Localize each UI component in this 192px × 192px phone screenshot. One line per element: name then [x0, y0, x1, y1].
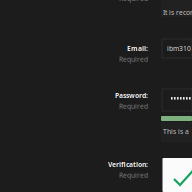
button[interactable]: Password field — [162, 89, 192, 111]
staticText: Required — [119, 171, 148, 180]
staticText: ibm310 — [167, 44, 191, 53]
button[interactable]: Verification captcha — [162, 158, 192, 192]
staticText: Verification: — [108, 160, 148, 169]
staticText: Required — [119, 102, 148, 111]
staticText: It is recom — [163, 8, 192, 17]
staticText: This is a — [163, 127, 189, 136]
staticText: Required — [119, 0, 148, 3]
staticText: Email: — [127, 44, 148, 53]
staticText: Required — [119, 55, 148, 64]
staticText: Password: — [115, 91, 148, 100]
button[interactable]: Email field — [162, 39, 192, 58]
